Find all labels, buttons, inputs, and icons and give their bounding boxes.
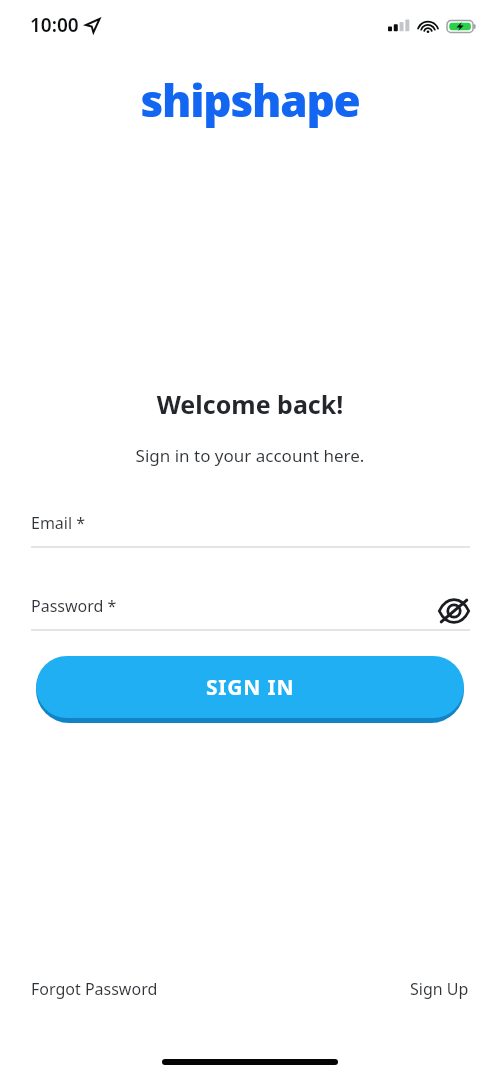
staticText: Sign Up [410,978,469,1000]
staticText: Password * [31,595,117,617]
button[interactable]: SIGN IN [36,656,464,723]
staticText: Forgot Password [31,978,158,1000]
button[interactable]: Forgot Password [31,978,158,1000]
button[interactable]: Show password [432,589,476,633]
button[interactable]: Email * [31,512,470,548]
staticText: 10:00 [30,12,79,38]
button[interactable]: Password * [31,595,470,631]
staticText: shipshape [0,70,500,130]
button[interactable]: Sign Up [410,978,469,1000]
staticText: SIGN IN [206,673,295,702]
staticText: Welcome back! [0,387,500,421]
staticText: Sign in to your account here. [0,444,500,467]
staticText: Email * [31,512,86,534]
